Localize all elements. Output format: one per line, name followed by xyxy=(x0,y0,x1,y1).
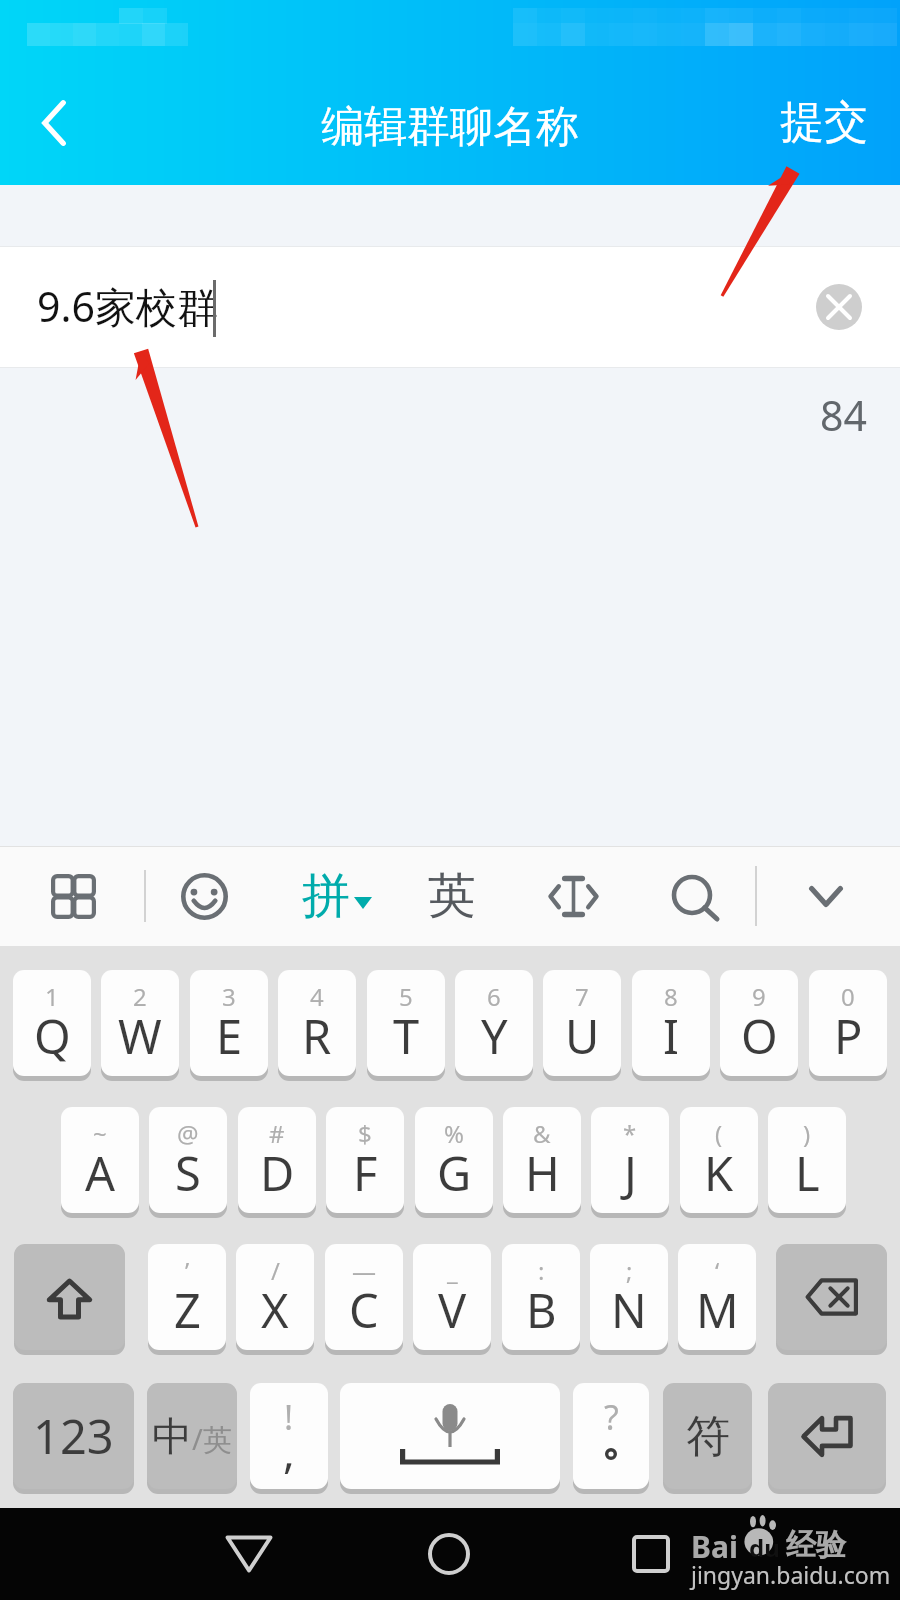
staticText: : xyxy=(538,1254,545,1287)
button[interactable]: Back xyxy=(10,78,100,168)
button[interactable]: Enter xyxy=(768,1383,886,1489)
button[interactable]: ) xyxy=(768,1107,846,1213)
staticText: ) xyxy=(803,1117,811,1150)
button[interactable]: Switch language xyxy=(147,1383,237,1489)
staticText: jingyan.baidu.com xyxy=(691,1559,891,1590)
staticText: 经验 xyxy=(786,1526,846,1564)
staticText: 中 xyxy=(152,1411,192,1461)
button[interactable]: & xyxy=(503,1107,581,1213)
button[interactable]: ( xyxy=(680,1107,758,1213)
button[interactable]: : xyxy=(502,1244,580,1350)
staticText: 9 xyxy=(752,980,766,1013)
button[interactable]: 4 xyxy=(278,970,356,1076)
button[interactable]: ‘ xyxy=(678,1244,756,1350)
button[interactable]: % xyxy=(415,1107,493,1213)
button[interactable]: 5 xyxy=(367,970,445,1076)
button[interactable]: 7 xyxy=(543,970,621,1076)
staticText: * xyxy=(623,1117,637,1150)
staticText: 123 xyxy=(33,1404,114,1468)
button[interactable]: ’ xyxy=(148,1244,226,1350)
button[interactable]: Period xyxy=(573,1383,649,1489)
staticText: 3 xyxy=(222,980,236,1013)
staticText: W xyxy=(118,1004,162,1068)
button[interactable]: _ xyxy=(413,1244,491,1350)
staticText: H xyxy=(525,1141,560,1205)
button[interactable]: # xyxy=(238,1107,316,1213)
button[interactable]: * xyxy=(591,1107,669,1213)
staticText: X xyxy=(261,1278,289,1342)
button[interactable]: Emoji xyxy=(159,846,249,946)
staticText: N xyxy=(611,1278,647,1342)
button[interactable]: Backspace xyxy=(776,1244,887,1350)
button[interactable]: / xyxy=(236,1244,314,1350)
staticText: Q xyxy=(34,1004,71,1068)
staticText: / xyxy=(271,1254,280,1287)
staticText: 6 xyxy=(487,980,501,1013)
staticText: 2 xyxy=(133,980,147,1013)
staticText: T xyxy=(393,1004,420,1068)
staticText: ’ xyxy=(185,1254,190,1287)
staticText: 提交 xyxy=(780,95,868,150)
staticText: 1 xyxy=(45,980,59,1013)
staticText: M xyxy=(696,1278,739,1342)
button[interactable]: ; xyxy=(590,1244,668,1350)
staticText: I xyxy=(663,1004,679,1068)
button[interactable]: Space xyxy=(340,1383,560,1489)
staticText: J xyxy=(624,1141,637,1205)
button[interactable]: Numbers xyxy=(13,1383,134,1489)
button[interactable]: 拼 xyxy=(290,856,384,936)
staticText: F xyxy=(353,1141,378,1205)
button[interactable]: ~ xyxy=(61,1107,139,1213)
button[interactable]: Home xyxy=(404,1508,494,1600)
staticText: /英 xyxy=(192,1419,232,1459)
staticText: G xyxy=(437,1141,472,1205)
button[interactable]: Symbols xyxy=(663,1383,752,1489)
staticText: , xyxy=(283,1421,295,1481)
button[interactable]: 8 xyxy=(632,970,710,1076)
staticText: ; xyxy=(626,1254,633,1287)
button[interactable]: Recent apps xyxy=(606,1508,696,1600)
button[interactable]: Keyboard layouts xyxy=(28,846,118,946)
button[interactable]: 9.6家校群 xyxy=(0,247,900,367)
staticText: Z xyxy=(174,1278,201,1342)
button[interactable]: @ xyxy=(149,1107,227,1213)
staticText: % xyxy=(444,1117,464,1150)
staticText: ‘ xyxy=(715,1254,720,1287)
button[interactable]: Move cursor xyxy=(528,846,618,946)
button[interactable]: 9 xyxy=(720,970,798,1076)
button[interactable]: Comma xyxy=(250,1383,328,1489)
button[interactable]: 提交 xyxy=(762,77,886,167)
button[interactable]: 0 xyxy=(809,970,887,1076)
staticText: L xyxy=(795,1141,820,1205)
staticText: Y xyxy=(481,1004,508,1068)
staticText: P xyxy=(834,1004,863,1068)
staticText: K xyxy=(704,1141,734,1205)
button[interactable]: 英 xyxy=(412,856,492,936)
button[interactable]: Back xyxy=(204,1508,294,1600)
staticText: 英 xyxy=(428,866,476,926)
staticText: 编辑群聊名称 xyxy=(321,100,579,154)
staticText: ! xyxy=(284,1394,294,1440)
staticText: S xyxy=(175,1141,201,1205)
button[interactable]: — xyxy=(325,1244,403,1350)
button[interactable]: 1 xyxy=(13,970,91,1076)
staticText: 9.6家校群 xyxy=(37,278,218,334)
staticText: 5 xyxy=(399,980,413,1013)
staticText: 符 xyxy=(686,1409,730,1464)
button[interactable]: Search xyxy=(652,846,742,946)
staticText: 7 xyxy=(575,980,589,1013)
button[interactable]: Shift xyxy=(14,1244,125,1350)
staticText: & xyxy=(533,1117,551,1150)
button[interactable]: Clear text xyxy=(795,263,883,351)
button[interactable]: 6 xyxy=(455,970,533,1076)
staticText: O xyxy=(741,1004,778,1068)
staticText: du xyxy=(749,1531,780,1564)
button[interactable]: 3 xyxy=(190,970,268,1076)
button[interactable]: 2 xyxy=(101,970,179,1076)
staticText: @ xyxy=(177,1117,199,1150)
staticText: U xyxy=(565,1004,600,1068)
button[interactable]: Hide keyboard xyxy=(781,846,871,946)
staticText: ~ xyxy=(93,1117,107,1150)
staticText: C xyxy=(349,1278,379,1342)
button[interactable]: $ xyxy=(326,1107,404,1213)
